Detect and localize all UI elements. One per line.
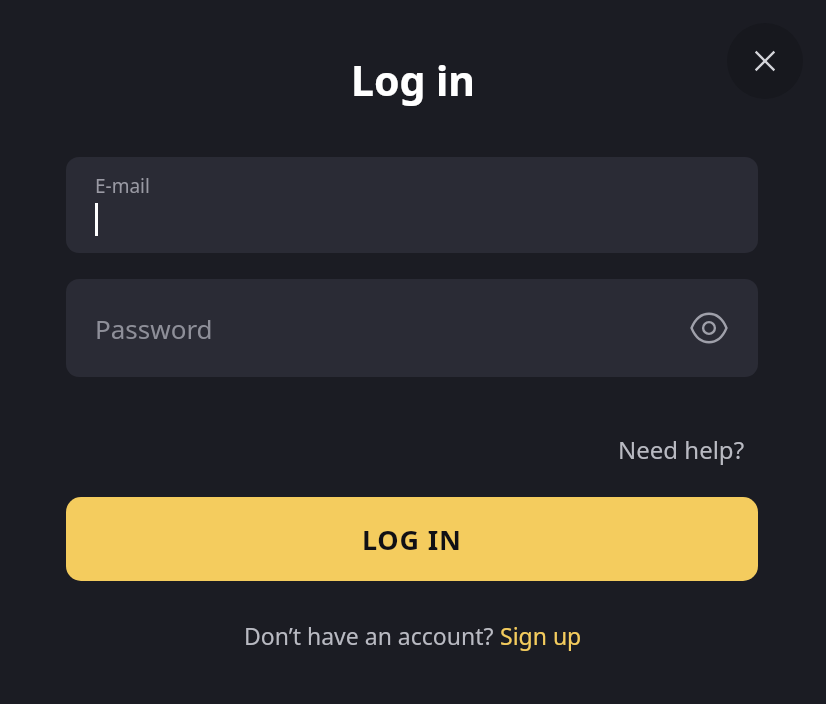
button[interactable]: Password	[66, 279, 758, 377]
button[interactable]: E-mail	[66, 157, 758, 253]
staticText: Don’t have an account?	[244, 620, 500, 651]
button[interactable]: Show password	[683, 302, 735, 354]
staticText: LOG IN	[362, 521, 462, 558]
button[interactable]: Close	[727, 23, 803, 99]
button[interactable]: Sign up	[500, 620, 582, 651]
staticText: Need help?	[618, 433, 745, 466]
button[interactable]: Need help?	[612, 428, 751, 471]
staticText: Log in	[351, 52, 476, 108]
staticText: E-mail	[95, 173, 150, 199]
staticText: Password	[95, 311, 213, 346]
staticText: Sign up	[500, 620, 582, 651]
button[interactable]: LOG IN	[66, 497, 758, 581]
